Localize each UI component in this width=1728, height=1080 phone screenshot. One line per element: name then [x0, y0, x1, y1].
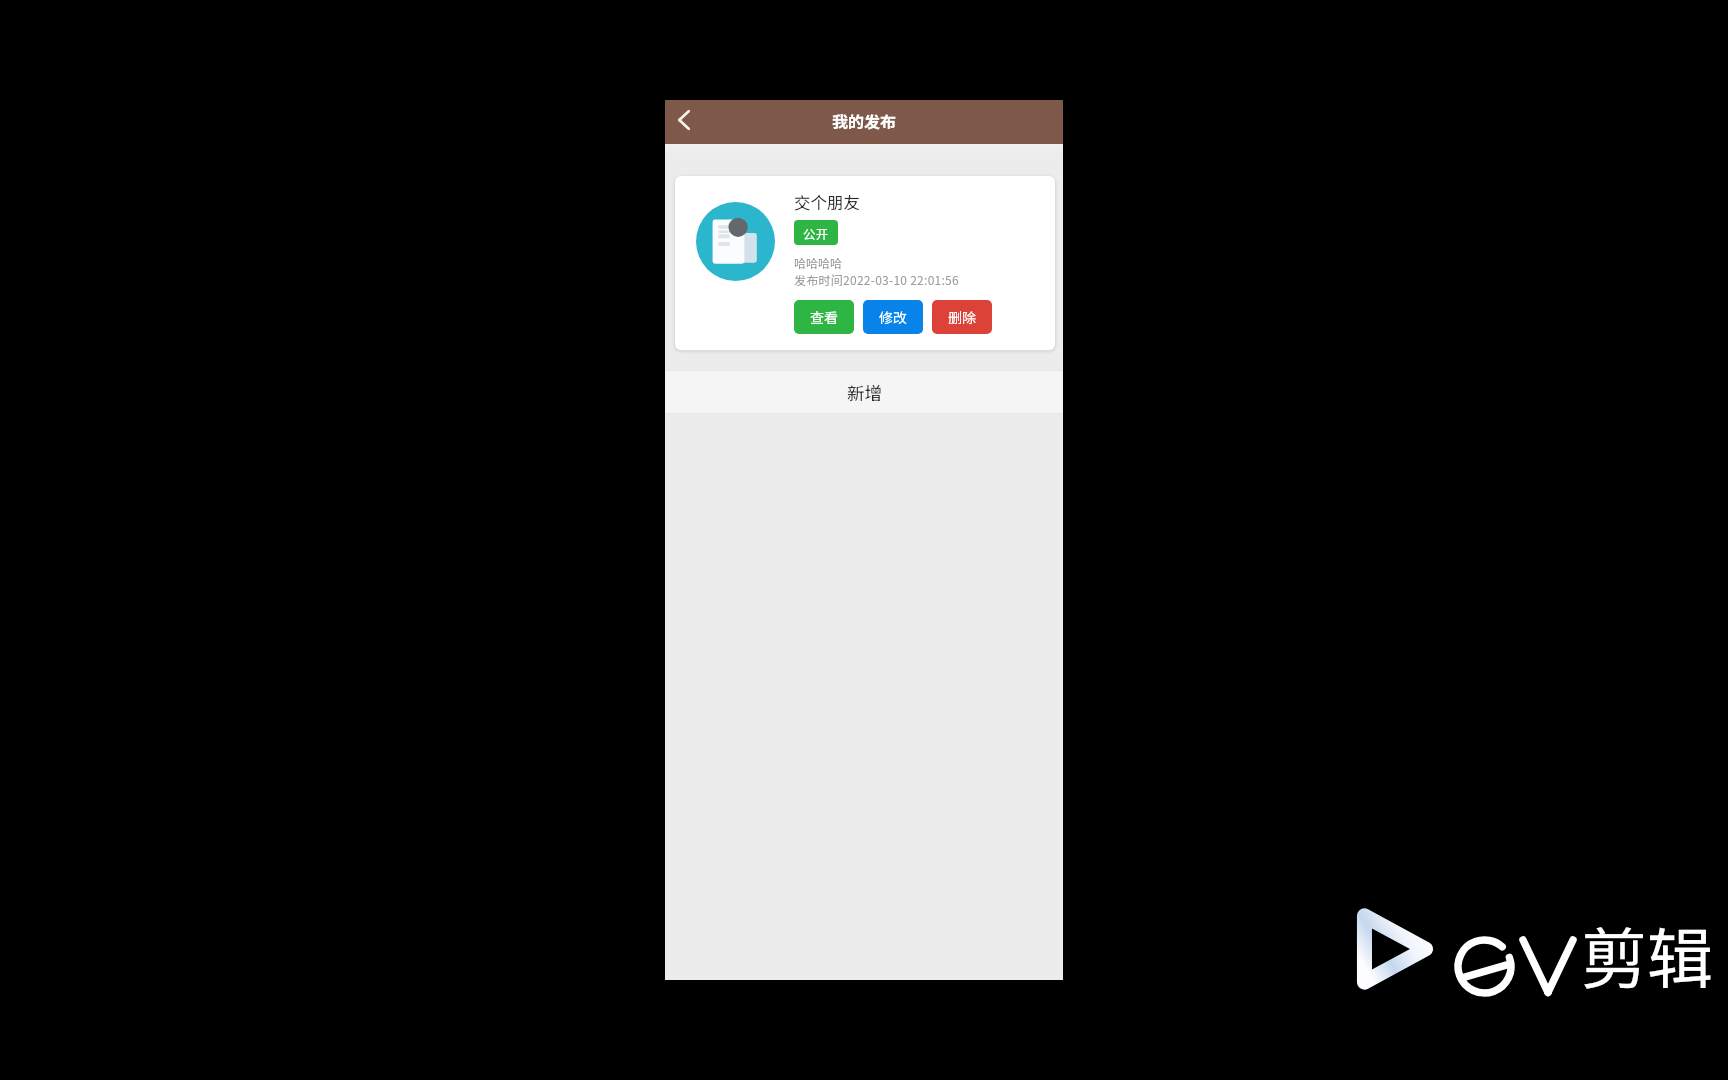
button[interactable]: 交个朋友: [675, 176, 1055, 350]
button[interactable]: 删除: [932, 300, 992, 334]
button[interactable]: 新增: [665, 370, 1063, 414]
button[interactable]: 公开: [794, 220, 838, 245]
button[interactable]: 修改: [863, 300, 923, 334]
staticText: 新增: [847, 380, 882, 405]
staticText: 查看: [810, 307, 838, 327]
staticText: 公开: [803, 224, 829, 242]
staticText: 哈哈哈哈: [794, 254, 843, 271]
staticText: 发布时间2022-03-10 22:01:56: [794, 271, 959, 288]
staticText: 交个朋友: [794, 190, 860, 214]
button[interactable]: 查看: [794, 300, 854, 334]
staticText: 我的发布: [832, 109, 897, 132]
staticText: 剪辑: [1581, 906, 1713, 1002]
button[interactable]: Back: [666, 102, 702, 138]
staticText: 修改: [879, 307, 907, 327]
staticText: 删除: [948, 307, 976, 327]
